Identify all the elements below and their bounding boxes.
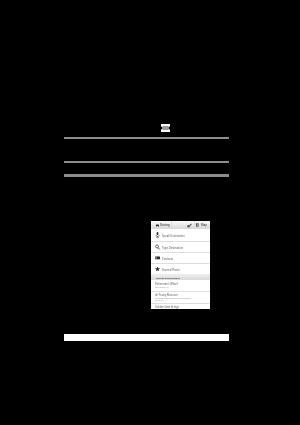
staticText: Driving (160, 223, 170, 227)
staticText: Golden Gate Bridge (155, 305, 179, 309)
button[interactable]: Starred Places (151, 263, 210, 274)
staticText: Speak Destination (162, 234, 185, 238)
staticText: Recent Destinations (156, 276, 180, 279)
staticText: Contacts (162, 257, 174, 261)
staticText: San Francisco, CA (155, 286, 169, 288)
button[interactable]: Fisherman's Wharf (151, 280, 210, 291)
button[interactable]: Map (194, 221, 210, 229)
button[interactable]: Golden Gate Bridge (151, 303, 210, 309)
staticText: Starred Places (162, 268, 180, 272)
staticText: Type Destination (162, 246, 184, 250)
button[interactable]: Speak Destination (151, 229, 210, 241)
button[interactable]: Type Destination (151, 241, 210, 252)
button[interactable]: Driving (151, 221, 171, 229)
staticText: de Young Museum (155, 293, 178, 297)
staticText: 50 Hagiwara Tea Garden Drive, San Franci… (155, 297, 192, 299)
staticText: Fisherman's Wharf (155, 282, 178, 286)
button[interactable]: de Young Museum (151, 291, 210, 303)
staticText: Map (201, 223, 207, 227)
button[interactable]: Directions (185, 221, 194, 229)
button[interactable]: Contacts (151, 252, 210, 263)
staticText: CA 94118 (155, 299, 163, 301)
